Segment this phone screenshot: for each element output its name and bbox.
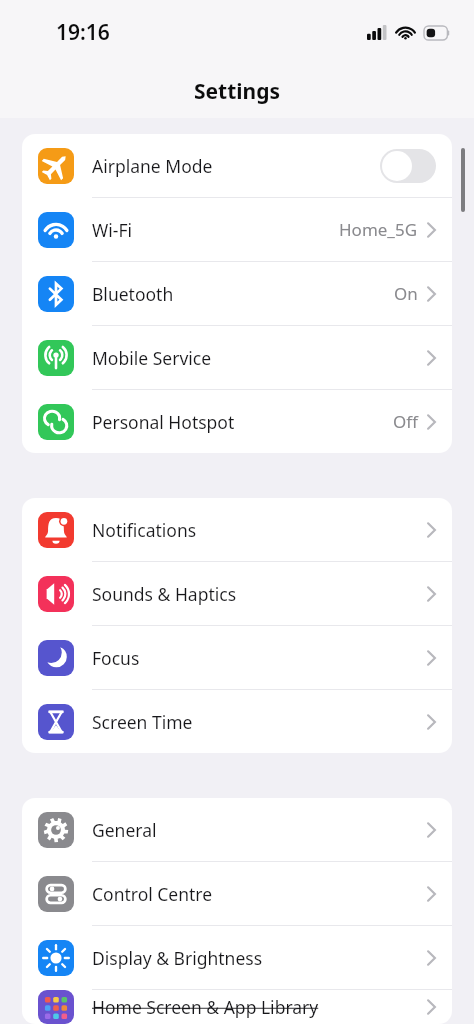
staticText: Notifications xyxy=(92,518,427,542)
button[interactable]: General xyxy=(22,798,452,862)
button[interactable]: Bluetooth xyxy=(22,262,452,326)
staticText: Screen Time xyxy=(92,710,427,734)
button[interactable]: Screen Time xyxy=(22,690,452,753)
button[interactable]: Mobile Service xyxy=(22,326,452,390)
staticText: Off xyxy=(393,410,418,433)
staticText: Wi-Fi xyxy=(92,218,339,242)
staticText: General xyxy=(92,818,427,842)
staticText: Focus xyxy=(92,646,427,670)
button[interactable]: Personal Hotspot xyxy=(22,390,452,453)
staticText: Display & Brightness xyxy=(92,946,427,970)
button[interactable]: Control Centre xyxy=(22,862,452,926)
staticText: Home_5G xyxy=(339,218,418,241)
staticText: Mobile Service xyxy=(92,346,427,370)
staticText: Home Screen & App Library xyxy=(92,995,427,1019)
button[interactable]: Airplane Mode toggle xyxy=(380,149,436,183)
staticText: Settings xyxy=(194,77,281,106)
button[interactable]: Home Screen & App Library xyxy=(22,990,452,1024)
staticText: 19:16 xyxy=(56,18,110,47)
staticText: On xyxy=(394,282,418,305)
staticText: Control Centre xyxy=(92,882,427,906)
button[interactable]: Display & Brightness xyxy=(22,926,452,990)
button[interactable]: Focus xyxy=(22,626,452,690)
staticText: Bluetooth xyxy=(92,282,394,306)
button[interactable]: Airplane Mode xyxy=(22,134,452,198)
button[interactable]: Sounds & Haptics xyxy=(22,562,452,626)
staticText: Airplane Mode xyxy=(92,154,380,178)
staticText: Sounds & Haptics xyxy=(92,582,427,606)
staticText: Personal Hotspot xyxy=(92,410,393,434)
button[interactable]: Notifications xyxy=(22,498,452,562)
button[interactable]: Wi-Fi xyxy=(22,198,452,262)
